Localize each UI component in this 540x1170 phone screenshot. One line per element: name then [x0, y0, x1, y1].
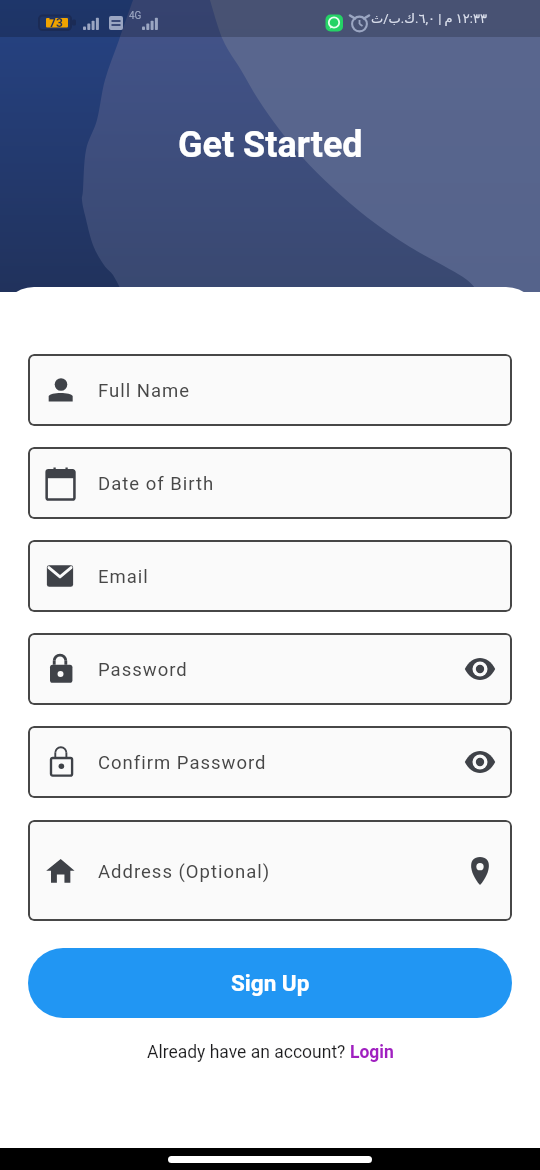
staticText: Sign Up	[231, 970, 310, 996]
button[interactable]: Toggle password visibility	[464, 746, 496, 778]
button[interactable]: Full Name	[28, 354, 512, 426]
staticText: 4G	[129, 10, 142, 22]
staticText: Get Started	[178, 124, 363, 166]
button[interactable]: Toggle password visibility	[464, 653, 496, 685]
button[interactable]: Date of Birth	[28, 447, 512, 519]
staticText: Address (Optional)	[98, 861, 271, 883]
staticText: Password	[98, 659, 188, 681]
button[interactable]: Pick location	[464, 855, 496, 887]
button[interactable]: Password	[28, 633, 512, 705]
button[interactable]: Sign Up	[28, 948, 512, 1018]
staticText: Login	[350, 1042, 394, 1063]
staticText: Date of Birth	[98, 473, 215, 495]
staticText: ١٢:٣٣ م | ٦,٠.ك.ب/ث	[371, 11, 487, 26]
button[interactable]: Address (Optional)	[28, 820, 512, 921]
button[interactable]: Confirm Password	[28, 726, 512, 798]
button[interactable]: Login	[350, 1042, 394, 1063]
button[interactable]: Email	[28, 540, 512, 612]
staticText: Full Name	[98, 380, 191, 402]
staticText: Confirm Password	[98, 752, 267, 774]
staticText: Already have an account?	[147, 1042, 350, 1063]
staticText: Email	[98, 566, 149, 588]
staticText: 73	[49, 16, 63, 30]
